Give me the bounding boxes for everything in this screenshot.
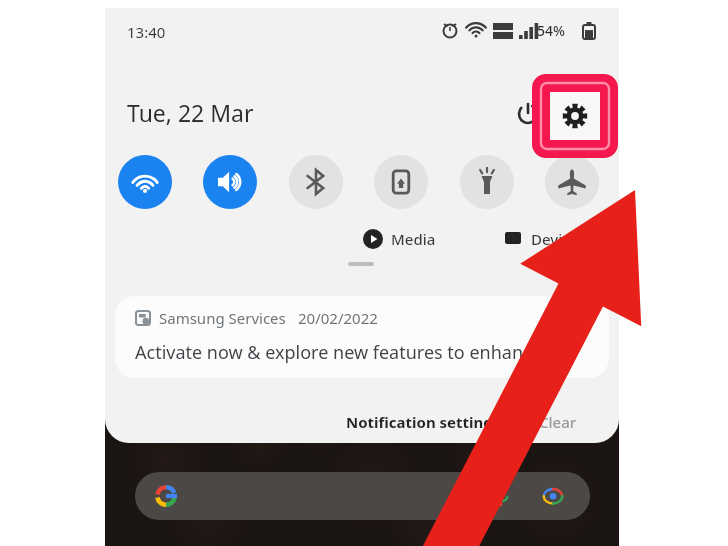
button[interactable]: Airplane mode xyxy=(545,155,599,209)
button[interactable]: Devices xyxy=(503,229,586,249)
button[interactable]: Samsung Services xyxy=(115,296,609,378)
staticText: Tue, 22 Mar xyxy=(127,97,254,128)
staticText: Devices xyxy=(531,229,586,249)
button[interactable]: Clear xyxy=(539,412,577,432)
staticText: Notification settings xyxy=(346,412,501,432)
button[interactable]: Bluetooth xyxy=(289,155,343,209)
button[interactable]: Lens xyxy=(539,482,567,510)
button[interactable]: Notification settings xyxy=(346,412,501,432)
button[interactable]: Settings xyxy=(532,74,618,158)
button[interactable]: Power xyxy=(508,94,548,134)
staticText: Activate now & explore new features to e… xyxy=(135,340,595,365)
button[interactable]: Wi-Fi xyxy=(118,155,172,209)
button[interactable]: Voice search xyxy=(487,482,515,510)
button[interactable]: Media xyxy=(363,229,436,249)
staticText: Clear xyxy=(539,412,577,432)
button[interactable]: Flashlight xyxy=(460,155,514,209)
staticText: Media xyxy=(391,229,436,249)
staticText: 20/02/2022 xyxy=(298,308,378,328)
staticText: 13:40 xyxy=(127,22,166,42)
staticText: Samsung Services xyxy=(159,308,286,328)
staticText: 54% xyxy=(537,21,565,40)
button[interactable]: Auto rotate xyxy=(374,155,428,209)
button[interactable]: Expand xyxy=(567,304,595,332)
button[interactable]: Sound xyxy=(203,155,257,209)
button[interactable]: Search xyxy=(135,472,590,520)
